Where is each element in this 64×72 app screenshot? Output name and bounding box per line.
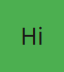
staticText: Hi [20, 21, 43, 51]
